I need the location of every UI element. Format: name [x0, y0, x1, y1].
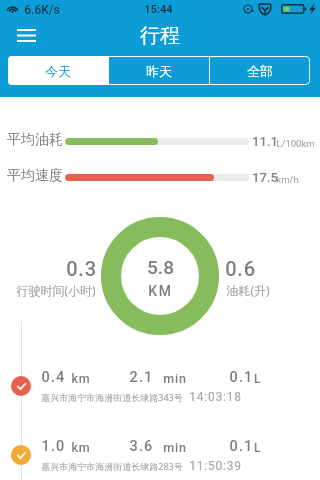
button[interactable]: 全部: [210, 56, 310, 85]
button[interactable]: Menu: [10, 18, 42, 52]
staticText: KM: [148, 283, 173, 299]
staticText: 11.1: [252, 134, 278, 149]
staticText: min: [163, 440, 187, 455]
staticText: 嘉兴市海宁市海洲街道长埭路283号: [41, 460, 183, 472]
staticText: 0.1: [229, 369, 254, 386]
staticText: km/h: [276, 174, 299, 185]
staticText: 全部: [247, 63, 273, 79]
staticText: 油耗(升): [226, 282, 270, 298]
button[interactable]: 1.0: [0, 426, 320, 480]
staticText: 1.0: [41, 438, 66, 455]
staticText: 0.4: [41, 369, 66, 386]
staticText: 2.1: [129, 369, 154, 386]
staticText: 0.1: [229, 438, 254, 455]
staticText: L: [254, 440, 261, 455]
staticText: 昨天: [146, 63, 172, 79]
staticText: 11:50:39: [189, 459, 242, 473]
button[interactable]: 昨天: [109, 56, 209, 85]
staticText: 5.8: [147, 256, 174, 278]
staticText: km: [71, 371, 91, 386]
staticText: 6.6K/s: [24, 3, 60, 17]
staticText: 今天: [45, 63, 71, 79]
staticText: 17.5: [252, 170, 278, 185]
staticText: 15:44: [144, 3, 173, 16]
staticText: 平均油耗: [7, 131, 63, 149]
staticText: km: [71, 440, 91, 455]
staticText: 行驶时间(小时): [16, 282, 96, 298]
staticText: L: [254, 371, 261, 386]
staticText: 嘉兴市海宁市海洲街道长埭路343号: [41, 391, 183, 403]
button[interactable]: 0.4: [0, 357, 320, 415]
button[interactable]: 今天: [8, 56, 108, 85]
staticText: 行程: [140, 23, 180, 48]
staticText: 14:03:18: [189, 390, 242, 404]
staticText: 3.6: [129, 438, 154, 455]
staticText: 0.3: [66, 257, 97, 280]
staticText: 0.6: [225, 257, 256, 280]
staticText: L/100km: [276, 138, 315, 149]
staticText: min: [163, 371, 187, 386]
staticText: 平均速度: [7, 167, 63, 185]
